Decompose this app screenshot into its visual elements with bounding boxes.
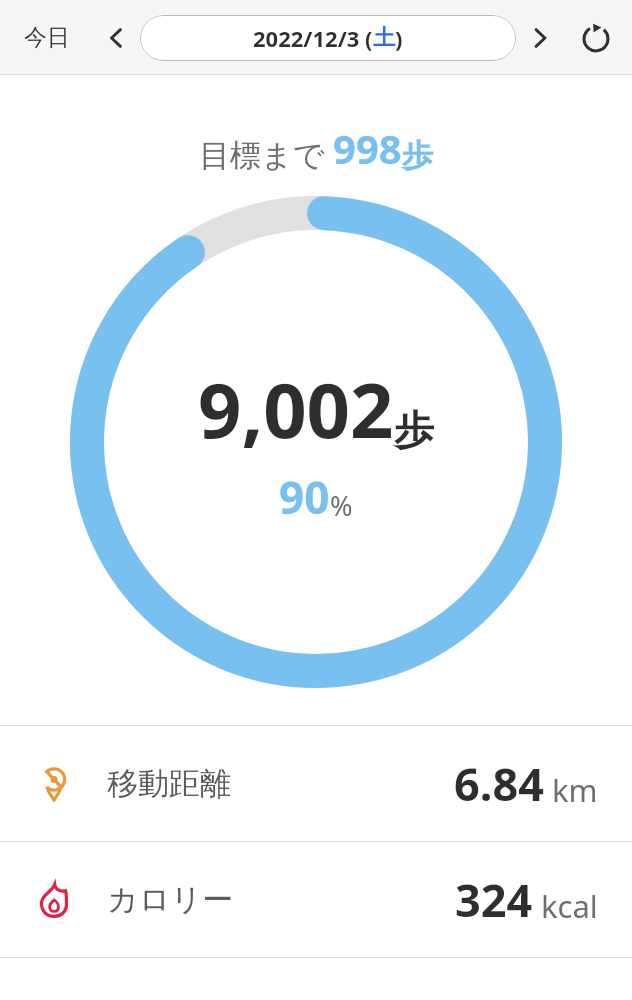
staticText: kcal [541,885,598,927]
button[interactable]: Refresh [574,16,618,60]
other: Distance [34,764,74,804]
staticText: ) [395,23,403,53]
staticText: 目標まで [199,133,333,175]
staticText: カロリー [107,880,234,919]
button[interactable]: Distance [0,726,632,841]
staticText: 6.84 [454,753,544,814]
staticText: 90 [279,467,330,527]
button[interactable]: Previous day [96,18,136,58]
staticText: 移動距離 [107,764,231,803]
staticText: 土 [373,24,395,52]
staticText: km [552,769,598,811]
staticText: 2022/12/3 ( [253,23,373,53]
button[interactable]: 今日 [14,17,80,58]
staticText: 9,002 [198,357,394,461]
button[interactable]: Calories [0,842,632,957]
staticText: % [330,487,353,524]
button[interactable]: 2022/12/3 ( [140,15,516,61]
staticText: 歩 [402,136,433,175]
other: Calories [34,880,74,920]
staticText: 998 [333,121,402,175]
button[interactable]: Next day [520,18,560,58]
staticText: 324 [455,869,533,930]
staticText: 今日 [24,23,70,52]
staticText: 歩 [394,405,434,455]
